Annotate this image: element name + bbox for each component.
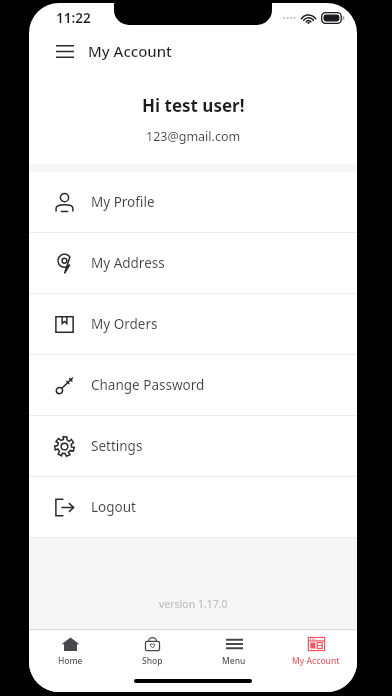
staticText: Menu: [222, 655, 246, 667]
staticText: My Account: [292, 655, 340, 667]
staticText: My Address: [91, 254, 165, 272]
staticText: My Orders: [91, 315, 158, 333]
button[interactable]: Change Password: [29, 355, 357, 415]
button[interactable]: Settings: [29, 416, 357, 476]
staticText: Settings: [91, 437, 143, 455]
staticText: My Account: [88, 41, 172, 61]
staticText: Change Password: [91, 376, 205, 394]
button[interactable]: My Account: [275, 630, 357, 672]
staticText: My Profile: [91, 193, 155, 211]
staticText: version 1.17.0: [159, 597, 228, 611]
button[interactable]: Home: [29, 630, 111, 672]
staticText: Logout: [91, 498, 136, 516]
staticText: Shop: [142, 655, 163, 667]
button[interactable]: Shop: [111, 630, 193, 672]
button[interactable]: Menu: [193, 630, 275, 672]
button[interactable]: My Address: [29, 233, 357, 293]
button[interactable]: Open navigation menu: [49, 35, 81, 67]
button[interactable]: My Profile: [29, 172, 357, 232]
staticText: Hi test user!: [142, 94, 245, 117]
staticText: Home: [58, 655, 83, 667]
button[interactable]: Logout: [29, 477, 357, 537]
staticText: 123@gmail.com: [146, 128, 241, 145]
button[interactable]: My Orders: [29, 294, 357, 354]
staticText: 11:22: [56, 9, 91, 27]
